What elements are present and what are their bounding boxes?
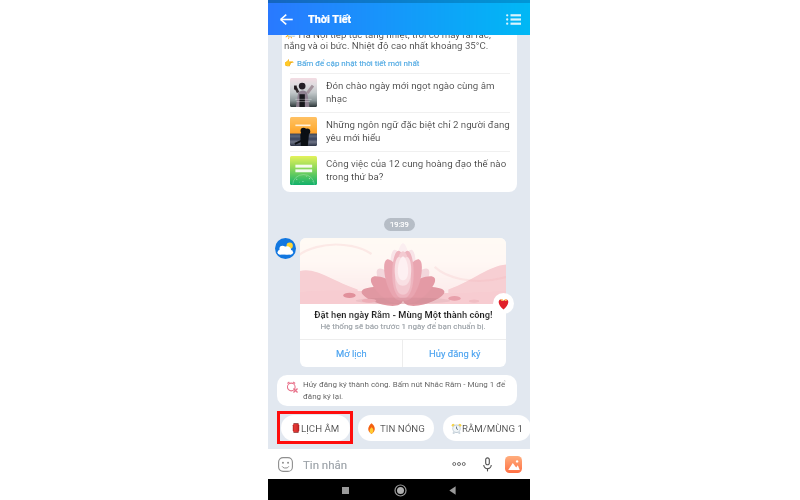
staticText: RẰM/MÙNG 1 <box>462 423 523 434</box>
button[interactable]: LỊCH ÂM <box>281 415 350 441</box>
staticText: 👉 <box>284 59 294 68</box>
button[interactable]: Đón chào ngày mới ngọt ngào cùng âm nhạc <box>282 73 517 112</box>
button[interactable]: Back <box>274 7 298 31</box>
button[interactable]: Send image <box>505 456 522 473</box>
button[interactable]: Menu <box>501 7 525 31</box>
button[interactable]: Mở lịch <box>300 340 402 367</box>
button[interactable]: Home <box>391 481 409 499</box>
staticText: LỊCH ÂM <box>301 423 340 434</box>
button[interactable]: Những ngôn ngữ đặc biệt chỉ 2 người đang… <box>282 112 517 151</box>
staticText: Những ngôn ngữ đặc biệt chỉ 2 người đang… <box>326 119 516 144</box>
button[interactable]: TIN NÓNG <box>358 415 434 441</box>
button[interactable]: 👉 <box>284 59 420 68</box>
staticText: 🌤️ Hà Nội tiếp tục tăng nhiệt, trời có m… <box>284 29 497 51</box>
staticText: Hệ thống sẽ báo trước 1 ngày để bạn chuẩ… <box>320 322 486 331</box>
staticText: Hủy đăng ký thành công. Bấm nút Nhắc Rằm… <box>303 380 510 401</box>
staticText: Hủy đăng ký <box>429 348 481 359</box>
button[interactable]: RẰM/MÙNG 1 <box>443 415 531 441</box>
button[interactable]: Voice message <box>478 455 496 473</box>
staticText: Đón chào ngày mới ngọt ngào cùng âm nhạc <box>326 80 516 105</box>
staticText: TIN NÓNG <box>380 423 425 434</box>
staticText: Thời Tiết <box>308 13 352 26</box>
button[interactable]: More options <box>450 455 468 473</box>
staticText: 19:39 <box>390 220 409 229</box>
staticText: Tin nhắn <box>303 458 348 471</box>
button[interactable]: Công việc của 12 cung hoàng đạo thế nào … <box>282 151 517 190</box>
button[interactable]: Emoji <box>277 456 294 473</box>
button[interactable]: Like <box>493 293 514 314</box>
staticText: Đặt hẹn ngày Rằm - Mùng Một thành công! <box>314 309 493 320</box>
button[interactable]: Hủy đăng ký <box>403 340 506 367</box>
staticText: Công việc của 12 cung hoàng đạo thế nào … <box>326 158 516 183</box>
staticText: Bấm để cập nhật thời tiết mới nhất <box>297 59 420 68</box>
button[interactable]: Recents <box>336 481 354 499</box>
staticText: Mở lịch <box>336 348 367 359</box>
button[interactable]: Back <box>443 481 461 499</box>
